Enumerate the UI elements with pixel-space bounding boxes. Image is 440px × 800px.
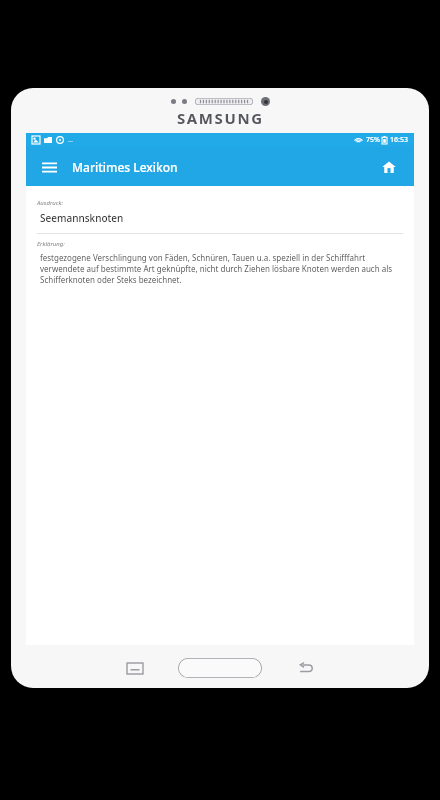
staticText: Maritimes Lexikon xyxy=(72,159,178,175)
staticText: festgezogene Verschlingung von Fäden, Sc… xyxy=(40,252,403,285)
staticText: Ausdruck: xyxy=(37,199,63,207)
staticText: Seemannsknoten xyxy=(40,211,124,225)
button[interactable]: Home xyxy=(178,658,262,678)
button[interactable]: Home xyxy=(374,152,404,182)
button[interactable]: Recent apps xyxy=(122,655,148,681)
staticText: ... xyxy=(68,136,73,144)
button[interactable]: Back xyxy=(292,655,318,681)
staticText: 16:53 xyxy=(390,135,408,145)
button[interactable]: Open navigation menu xyxy=(34,152,64,182)
staticText: SAMSUNG xyxy=(177,108,264,128)
staticText: Erklärung: xyxy=(37,240,65,248)
staticText: 75% xyxy=(366,135,380,145)
